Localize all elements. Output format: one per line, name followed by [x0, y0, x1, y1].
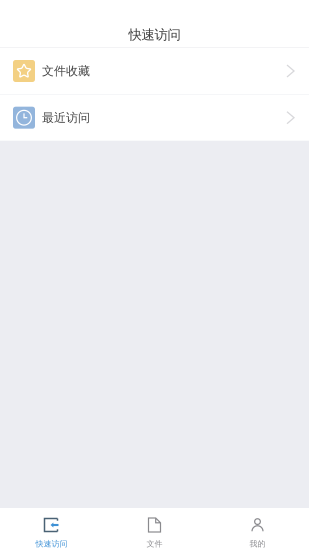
- staticText: 快速访问: [128, 27, 180, 43]
- button[interactable]: 我的: [206, 508, 309, 550]
- staticText: 最近访问: [42, 110, 90, 125]
- button[interactable]: 文件: [103, 508, 206, 550]
- staticText: 文件收藏: [42, 64, 90, 78]
- staticText: 快速访问: [35, 539, 67, 549]
- staticText: 文件: [146, 539, 162, 549]
- button[interactable]: 文件收藏: [0, 48, 309, 94]
- button[interactable]: 最近访问: [0, 95, 309, 141]
- button[interactable]: 快速访问: [0, 508, 103, 550]
- staticText: 我的: [249, 539, 265, 549]
